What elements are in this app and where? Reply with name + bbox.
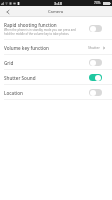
staticText: Shutter Sound bbox=[4, 75, 89, 81]
button[interactable]: Back bbox=[0, 6, 16, 17]
staticText: 3:48 bbox=[54, 1, 62, 6]
button[interactable]: Location bbox=[0, 85, 112, 100]
button[interactable]: Toggle on bbox=[89, 74, 102, 81]
staticText: Rapid shooting function bbox=[4, 22, 57, 28]
staticText: Grid bbox=[4, 60, 89, 66]
button[interactable]: Volume key function bbox=[0, 40, 112, 55]
button[interactable]: Toggle off bbox=[89, 89, 102, 96]
button[interactable]: Toggle off bbox=[89, 59, 102, 66]
staticText: 73% bbox=[94, 1, 101, 5]
button[interactable]: Shutter Sound bbox=[0, 70, 112, 85]
button[interactable]: Grid bbox=[0, 55, 112, 70]
button[interactable]: Toggle off bbox=[89, 25, 102, 32]
staticText: Location bbox=[4, 90, 89, 96]
button[interactable]: Rapid shooting function bbox=[0, 17, 112, 40]
staticText: When the phone is in standby mode you ca… bbox=[4, 28, 76, 36]
staticText: Camera bbox=[48, 9, 64, 15]
staticText: Volume key function bbox=[4, 45, 88, 51]
staticText: Shutter bbox=[88, 45, 100, 50]
